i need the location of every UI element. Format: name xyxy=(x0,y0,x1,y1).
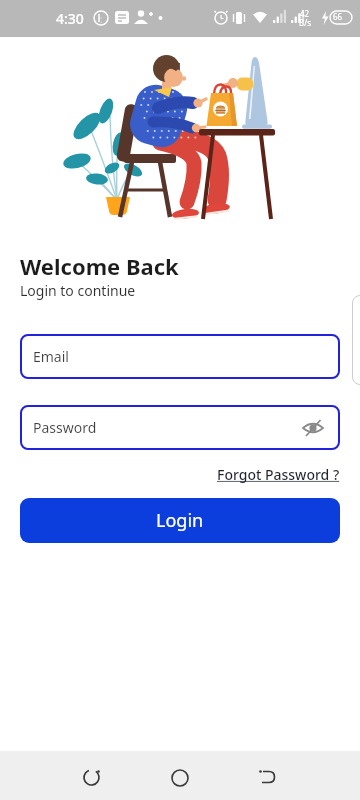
button[interactable]: Password xyxy=(20,405,340,450)
staticText: Login to continue xyxy=(20,281,136,300)
staticText: B/s xyxy=(299,17,312,28)
button[interactable] xyxy=(62,761,122,793)
staticText: 4:30 xyxy=(56,9,84,28)
staticText: 42 xyxy=(300,8,310,19)
staticText: Password xyxy=(33,418,97,437)
staticText: 66 xyxy=(333,11,343,22)
button[interactable] xyxy=(150,761,210,793)
button[interactable]: Login xyxy=(20,498,340,543)
staticText: Email xyxy=(33,347,69,366)
button[interactable]: Email xyxy=(20,334,340,379)
button[interactable]: Forgot Password ? xyxy=(217,465,340,484)
button[interactable] xyxy=(238,761,298,793)
staticText: Login xyxy=(156,508,204,533)
staticText: Welcome Back xyxy=(20,251,179,281)
